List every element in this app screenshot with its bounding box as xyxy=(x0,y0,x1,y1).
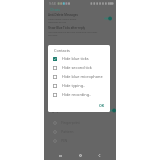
button[interactable]: Hide recording.. xyxy=(48,90,110,99)
staticText: Show Blue Ticks after reply xyxy=(48,26,86,30)
button[interactable]: Hide typing.. xyxy=(48,81,110,90)
button[interactable]: Anti-Delete Messages xyxy=(48,13,112,24)
button[interactable]: Home xyxy=(73,151,87,160)
staticText: Fingerprint Lock xyxy=(48,109,71,113)
staticText: Anti-Delete Messages xyxy=(48,13,78,17)
staticText: PIN xyxy=(61,138,68,143)
staticText: Hide second tick xyxy=(62,65,92,70)
staticText: OK xyxy=(99,103,105,108)
staticText: You hide blue tick and only show blue ti… xyxy=(48,31,98,37)
staticText: Hide recording.. xyxy=(62,92,92,97)
button[interactable]: Hide blue microphone xyxy=(48,72,110,81)
staticText: Fingerprint xyxy=(61,120,80,125)
button[interactable]: Hide second tick xyxy=(48,63,110,72)
staticText: Hide blue microphone xyxy=(62,74,103,79)
staticText: Hide blue ticks xyxy=(62,56,89,61)
button[interactable]: Fingerprint Lock xyxy=(48,108,116,113)
staticText: Pattern xyxy=(61,129,74,134)
staticText: Contacts xyxy=(54,48,70,53)
staticText: Chats xyxy=(50,7,61,12)
button[interactable]: Back xyxy=(92,151,106,160)
button[interactable]: Recents xyxy=(53,151,67,160)
staticText: 9:58 xyxy=(49,1,56,6)
button[interactable]: Hide blue ticks xyxy=(48,54,110,63)
button[interactable]: OK xyxy=(97,102,107,109)
staticText: Other people cannot delete messages for … xyxy=(48,18,77,24)
button[interactable]: Show Blue Ticks after reply xyxy=(48,26,112,37)
staticText: Hide typing.. xyxy=(62,83,86,88)
